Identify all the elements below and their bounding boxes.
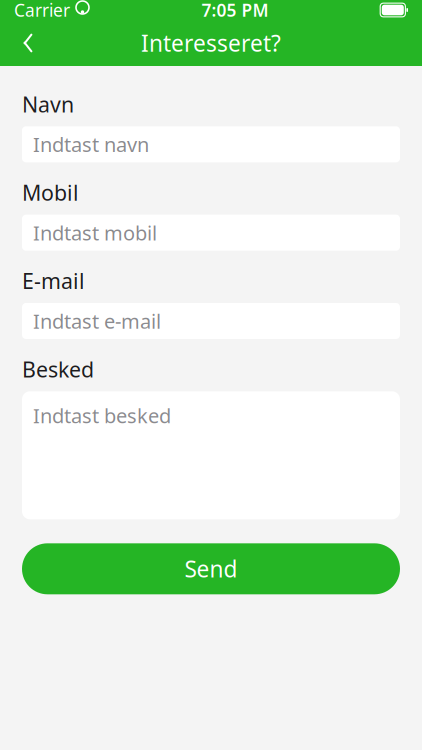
staticText: Indtast e-mail xyxy=(33,308,161,334)
staticText: 7:05 PM xyxy=(202,0,269,21)
button[interactable]: Indtast besked xyxy=(22,391,400,519)
staticText: Carrier xyxy=(14,0,70,21)
staticText: Navn xyxy=(22,90,74,118)
button[interactable]: Indtast mobil xyxy=(22,215,400,251)
staticText: Indtast navn xyxy=(33,131,149,158)
button[interactable]: Indtast navn xyxy=(22,126,400,162)
staticText: Mobil xyxy=(22,178,79,207)
staticText: Send xyxy=(184,554,237,584)
button[interactable]: Send xyxy=(22,543,400,594)
staticText: Besked xyxy=(22,355,94,383)
button[interactable]: Indtast e-mail xyxy=(22,303,400,339)
staticText: E-mail xyxy=(22,267,85,295)
button[interactable]: Back xyxy=(6,21,50,65)
staticText: Indtast besked xyxy=(33,402,171,429)
staticText: Interesseret? xyxy=(141,28,281,58)
staticText: Indtast mobil xyxy=(33,219,157,246)
